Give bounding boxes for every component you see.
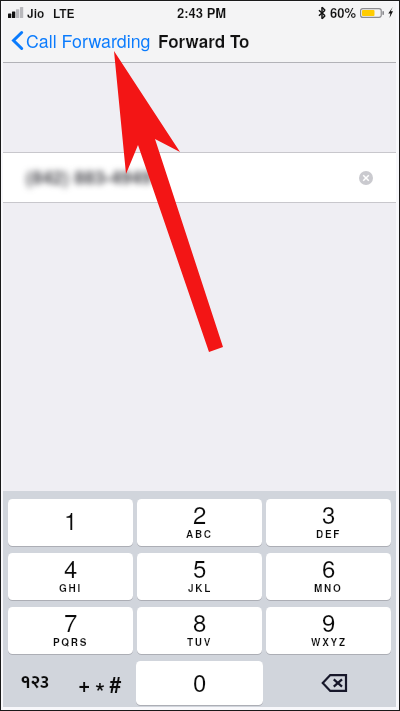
staticText: LTE — [53, 4, 75, 21]
button[interactable] — [266, 499, 391, 546]
staticText: ૧૨૩ — [21, 667, 50, 699]
staticText: DEF — [316, 527, 342, 541]
staticText: 9 — [322, 604, 336, 638]
button[interactable] — [137, 499, 262, 546]
button[interactable] — [137, 607, 262, 654]
staticText: GHI — [59, 581, 82, 595]
button[interactable] — [8, 553, 133, 600]
staticText: + ∗ # — [78, 668, 122, 698]
staticText: 60% — [330, 3, 357, 22]
staticText: Jio — [27, 4, 45, 21]
other: Clear text — [359, 171, 373, 185]
staticText: 7 — [64, 604, 78, 638]
staticText: 2 — [193, 496, 207, 530]
staticText: 0 — [193, 664, 207, 698]
staticText: 3 — [322, 496, 336, 530]
staticText: 8 — [193, 604, 207, 638]
staticText: 1 — [64, 502, 78, 536]
button[interactable] — [8, 499, 133, 546]
staticText: 6 — [322, 550, 336, 584]
button[interactable]: (842) 883-4949 — [3, 153, 396, 202]
staticText: Forward To — [158, 29, 250, 53]
button[interactable]: ૧૨૩ — [3, 661, 67, 705]
staticText: 4 — [64, 550, 78, 584]
button[interactable] — [266, 553, 391, 600]
button[interactable] — [8, 607, 133, 654]
staticText: 5 — [193, 550, 207, 584]
button[interactable] — [136, 661, 263, 705]
staticText: (842) 883-4949 — [26, 164, 152, 190]
staticText: ABC — [186, 527, 213, 541]
staticText: MNO — [314, 581, 343, 595]
button[interactable]: + ∗ # — [67, 661, 132, 705]
staticText: 2:43 PM — [177, 3, 227, 22]
button[interactable] — [266, 607, 391, 654]
button[interactable]: Call Forwarding — [3, 23, 157, 58]
staticText: WXYZ — [311, 635, 347, 649]
button[interactable]: Backspace — [263, 661, 396, 705]
staticText: PQRS — [53, 635, 89, 649]
button[interactable] — [137, 553, 262, 600]
staticText: TUV — [187, 635, 213, 649]
staticText: JKL — [188, 581, 212, 595]
staticText: Call Forwarding — [26, 28, 151, 53]
